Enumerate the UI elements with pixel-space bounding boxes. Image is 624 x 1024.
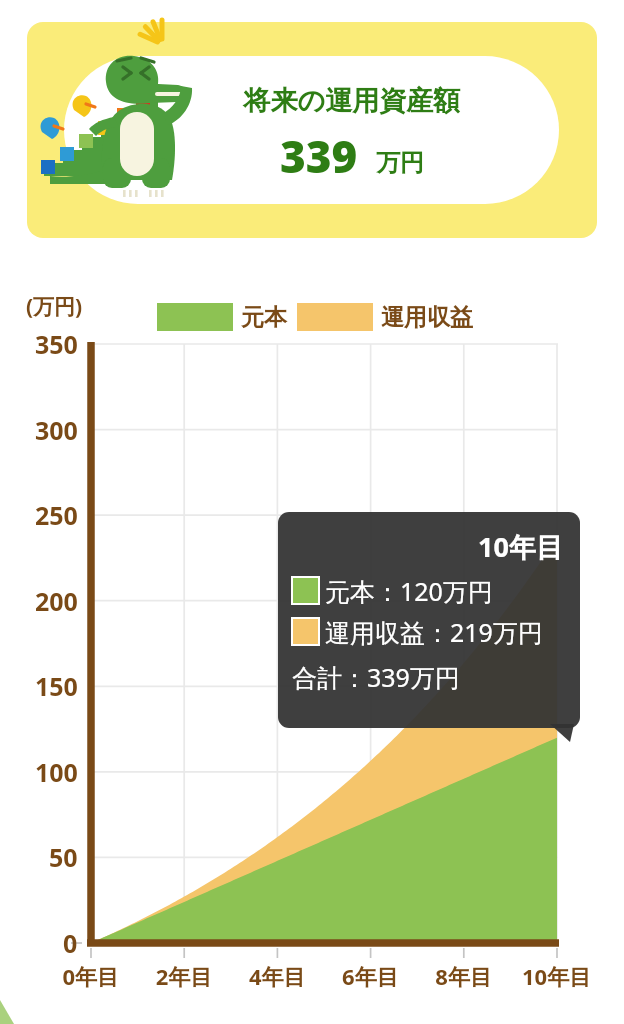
button[interactable]: 将来の運用資産額 339万円 資産推移グラフ (0, 0, 624, 1024)
